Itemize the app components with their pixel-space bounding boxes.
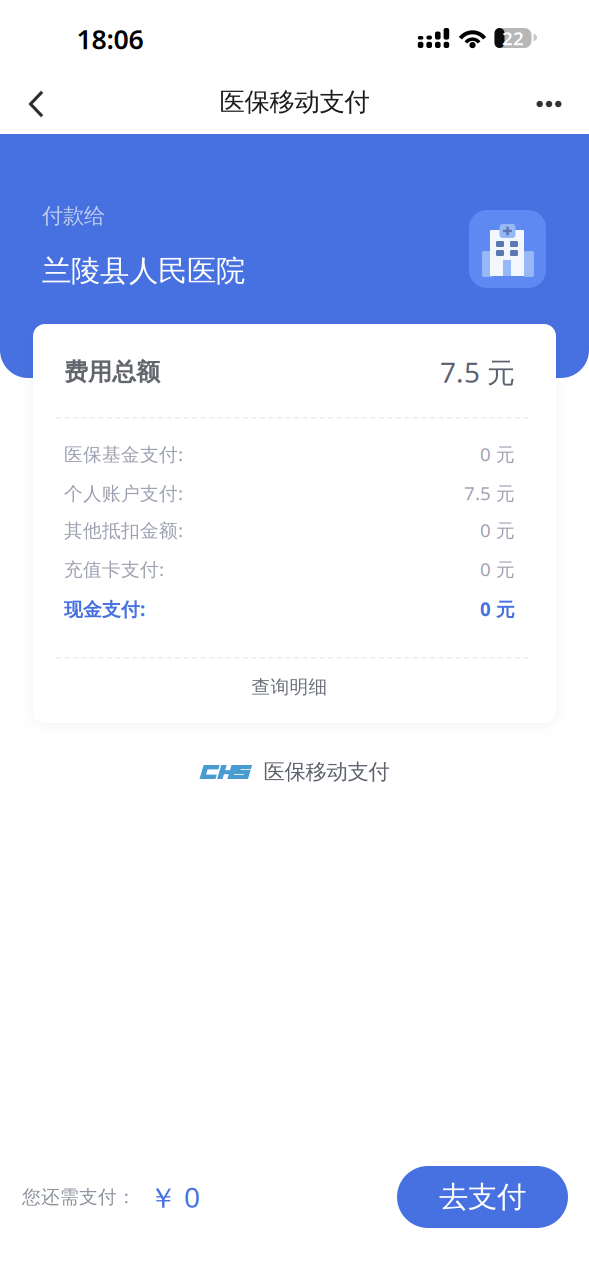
staticText: 其他抵扣金额: [64,518,183,542]
button[interactable]: 查询明细 [64,662,515,712]
staticText: 0 元 [480,557,515,581]
button[interactable]: 去支付 [397,1166,568,1228]
button[interactable]: More options [520,70,578,134]
staticText: 去支付 [439,1179,526,1215]
staticText: 22 [502,26,524,50]
staticText: 充值卡支付: [64,557,164,581]
staticText: 0 元 [480,518,515,542]
staticText: 付款给 [42,203,105,229]
staticText: 0 元 [480,597,515,621]
staticText: 费用总额 [64,357,160,387]
staticText: 0 元 [480,442,515,466]
staticText: 7.5 元 [440,353,515,391]
staticText: 查询明细 [251,675,327,698]
staticText: 7.5 元 [464,481,515,505]
staticText: 医保移动支付 [263,759,389,785]
button[interactable]: Back [7,70,65,134]
staticText: 医保移动支付 [219,86,369,117]
staticText: 现金支付: [64,597,145,621]
staticText: 医保基金支付: [64,442,183,466]
staticText: 兰陵县人民医院 [42,253,245,289]
staticText: 您还需支付： [22,1185,136,1208]
staticText: 18:06 [76,21,143,57]
staticText: ￥ 0 [149,1178,200,1216]
staticText: 个人账户支付: [64,481,183,505]
